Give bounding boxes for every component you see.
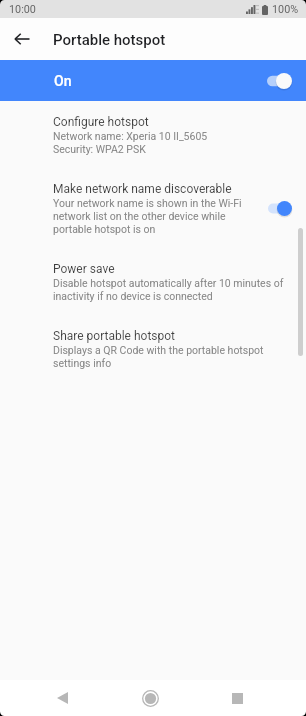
staticText: On xyxy=(54,73,72,89)
button[interactable]: Navigate up xyxy=(10,27,34,51)
button[interactable]: Power save xyxy=(0,259,306,326)
staticText: Make network name discoverable xyxy=(53,179,232,197)
staticText: Portable hotspot xyxy=(53,31,166,49)
button[interactable]: Make network name discoverable xyxy=(0,179,306,259)
button[interactable]: Back xyxy=(38,680,87,716)
staticText: 100% xyxy=(272,3,299,16)
staticText: Disable hotspot automatically after 10 m… xyxy=(53,277,284,303)
staticText: 10:00 xyxy=(9,3,36,16)
button[interactable]: Home xyxy=(126,680,175,716)
staticText: Configure hotspot xyxy=(53,112,149,130)
button[interactable]: On xyxy=(0,60,306,101)
button[interactable]: Recent apps xyxy=(213,680,262,716)
button[interactable]: Share portable hotspot xyxy=(0,326,306,393)
button[interactable]: Configure hotspot xyxy=(0,112,306,179)
staticText: Your network name is shown in the Wi-Fi … xyxy=(53,197,242,236)
button[interactable]: Toggle make network name discoverable xyxy=(268,201,292,216)
staticText: Power save xyxy=(53,259,115,277)
staticText: Network name: Xperia 10 II_5605 Security… xyxy=(53,130,208,156)
staticText: Share portable hotspot xyxy=(53,326,176,344)
staticText: Displays a QR Code with the portable hot… xyxy=(53,344,264,370)
